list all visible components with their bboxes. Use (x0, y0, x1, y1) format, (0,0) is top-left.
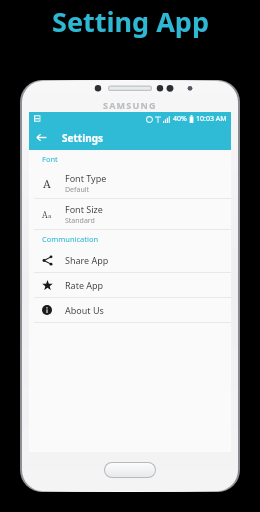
button[interactable]: A (29, 199, 231, 229)
staticText: Font (42, 154, 58, 164)
staticText: Rate App (65, 279, 104, 291)
staticText: A (43, 176, 51, 191)
staticText: Font Type (65, 172, 107, 184)
button[interactable]: Back (29, 125, 54, 150)
button[interactable]: Share App (29, 248, 231, 272)
staticText: Standard (65, 216, 95, 226)
staticText: Default (65, 185, 90, 195)
staticText: Communication (42, 234, 99, 244)
staticText: About Us (65, 304, 104, 316)
staticText: 40% (173, 114, 187, 124)
button[interactable]: A (29, 168, 231, 198)
staticText: SAMSUNG (103, 99, 157, 111)
button[interactable]: Rate App (29, 273, 231, 297)
staticText: Share App (65, 254, 109, 266)
staticText: Setting App (52, 3, 209, 40)
button[interactable]: About Us (29, 298, 231, 322)
staticText: Font Size (65, 203, 103, 215)
staticText: 10:03 AM (196, 114, 227, 124)
staticText: A (42, 209, 48, 220)
staticText: a (48, 212, 52, 220)
staticText: Settings (62, 131, 103, 145)
